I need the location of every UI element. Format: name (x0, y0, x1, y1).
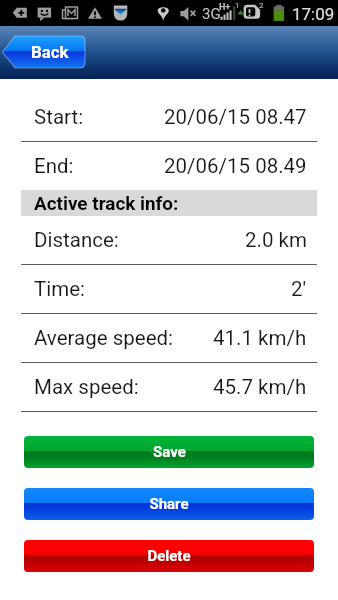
staticText: 2.0 km (245, 228, 307, 252)
button[interactable]: Save (24, 436, 314, 468)
button[interactable]: Back (2, 36, 85, 68)
staticText: 2' (291, 277, 307, 301)
staticText: Active track info: (34, 192, 179, 214)
staticText: 1 (235, 1, 240, 10)
staticText: Distance: (34, 228, 119, 252)
staticText: Max speed: (34, 375, 139, 399)
button[interactable]: Average speed: (21, 314, 317, 362)
button[interactable]: Time: (21, 265, 317, 313)
staticText: Share (149, 495, 189, 513)
staticText: Back (31, 42, 69, 62)
staticText: 2 (259, 1, 264, 10)
staticText: Save (153, 443, 186, 461)
staticText: 20/06/15 08.47 (164, 105, 307, 129)
staticText: End: (34, 154, 74, 178)
button[interactable]: End: (21, 142, 317, 190)
button[interactable]: Delete (24, 540, 314, 572)
staticText: 17:09 (292, 4, 335, 24)
button[interactable]: Distance: (21, 216, 317, 264)
button[interactable]: Max speed: (21, 363, 317, 411)
staticText: H+ (219, 2, 231, 13)
button[interactable]: Share (24, 488, 314, 520)
staticText: 20/06/15 08.49 (164, 154, 307, 178)
staticText: 41.1 km/h (213, 326, 307, 350)
staticText: 45.7 km/h (213, 375, 307, 399)
staticText: Delete (147, 547, 191, 565)
staticText: Start: (34, 105, 84, 129)
button[interactable]: Start: (21, 79, 317, 141)
staticText: Time: (34, 277, 86, 301)
staticText: 3G (202, 5, 221, 23)
staticText: Average speed: (34, 326, 174, 350)
